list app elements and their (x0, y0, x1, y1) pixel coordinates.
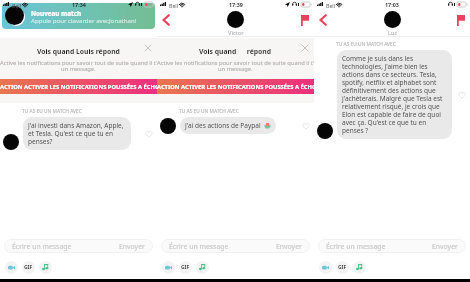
staticText: un message. (61, 65, 96, 73)
button[interactable]: GIF (336, 261, 349, 274)
staticText: GIF (181, 264, 190, 271)
staticText: Écrire un message (326, 242, 386, 251)
button[interactable]: GIF (179, 261, 192, 274)
staticText: TU AS EU UN MATCH AVEC (22, 108, 82, 115)
button[interactable]: Écrire un message (4, 239, 153, 253)
staticText: Bell (12, 2, 22, 9)
button[interactable]: Luc (384, 11, 401, 37)
button[interactable]: Close (143, 43, 152, 52)
button[interactable]: Like (145, 130, 153, 138)
button[interactable]: ACTION ACTIVER LES NOTIFICATIONS POUSSÉE… (0, 79, 157, 94)
staticText: Appuie pour clavarder avecJonathan! (31, 16, 137, 24)
staticText: GIF (24, 264, 33, 271)
button[interactable]: GIF camera (319, 261, 332, 274)
staticText: Vois quand répond (199, 47, 272, 56)
button[interactable]: Close (300, 43, 309, 52)
staticText: Écrire un message (169, 242, 229, 251)
button[interactable]: Music (353, 261, 366, 274)
staticText: Bell (169, 2, 179, 9)
button[interactable]: ACTION ACTIVER LES NOTIFICATIONS POUSSÉE… (157, 79, 314, 94)
button[interactable]: GIF camera (5, 261, 18, 274)
button[interactable]: Victor (227, 11, 244, 37)
button[interactable]: J'ai des actions de Paypal (185, 121, 271, 130)
button[interactable]: Like (458, 91, 466, 99)
staticText: Envoyer (432, 242, 458, 251)
button[interactable]: Écrire un message (161, 239, 310, 253)
staticText: Victor (228, 29, 244, 37)
staticText: TU AS EU UN MATCH AVEC (179, 108, 239, 115)
staticText: 17:03 (385, 1, 399, 8)
staticText: J'ai des actions de Paypal (185, 121, 271, 130)
button[interactable]: Comme je suis dans les technologies, j'a… (342, 54, 447, 135)
button[interactable]: Report (301, 15, 309, 26)
button[interactable]: Like (302, 122, 310, 130)
staticText: Envoyer (276, 242, 302, 251)
staticText: Active les notifications pour savoir tou… (0, 59, 157, 67)
staticText: J'ai investi dans Amazon, Apple, et Tesl… (28, 121, 126, 146)
button[interactable]: GIF camera (162, 261, 175, 274)
staticText: 17:39 (229, 1, 243, 8)
button[interactable]: Report (457, 15, 465, 26)
button[interactable]: Music (196, 261, 209, 274)
staticText: Luc (388, 29, 398, 37)
staticText: TU AS EU UN MATCH AVEC (336, 41, 396, 48)
staticText: Comme je suis dans les technologies, j'a… (342, 54, 447, 135)
button[interactable]: Écrire un message (318, 239, 466, 253)
staticText: Nouveau match (31, 9, 81, 18)
button[interactable]: J'ai investi dans Amazon, Apple, et Tesl… (28, 121, 126, 146)
button[interactable]: Back (318, 14, 328, 26)
staticText: Écrire un message (12, 242, 72, 251)
button[interactable]: GIF (22, 261, 35, 274)
staticText: Vois quand Louis répond (37, 47, 120, 56)
staticText: ACTION ACTIVER LES NOTIFICATIONS POUSSÉE… (0, 83, 157, 91)
staticText: 17:34 (72, 1, 86, 8)
button[interactable] (2, 3, 155, 29)
staticText: Active les notifications pour savoir tou… (157, 59, 314, 67)
staticText: Bell (326, 2, 336, 9)
staticText: Envoyer (119, 242, 145, 251)
button[interactable]: Music (39, 261, 52, 274)
staticText: un message. (218, 65, 253, 73)
staticText: ACTION ACTIVER LES NOTIFICATIONS POUSSÉE… (157, 83, 314, 91)
button[interactable]: Back (161, 14, 171, 26)
staticText: GIF (338, 264, 347, 271)
